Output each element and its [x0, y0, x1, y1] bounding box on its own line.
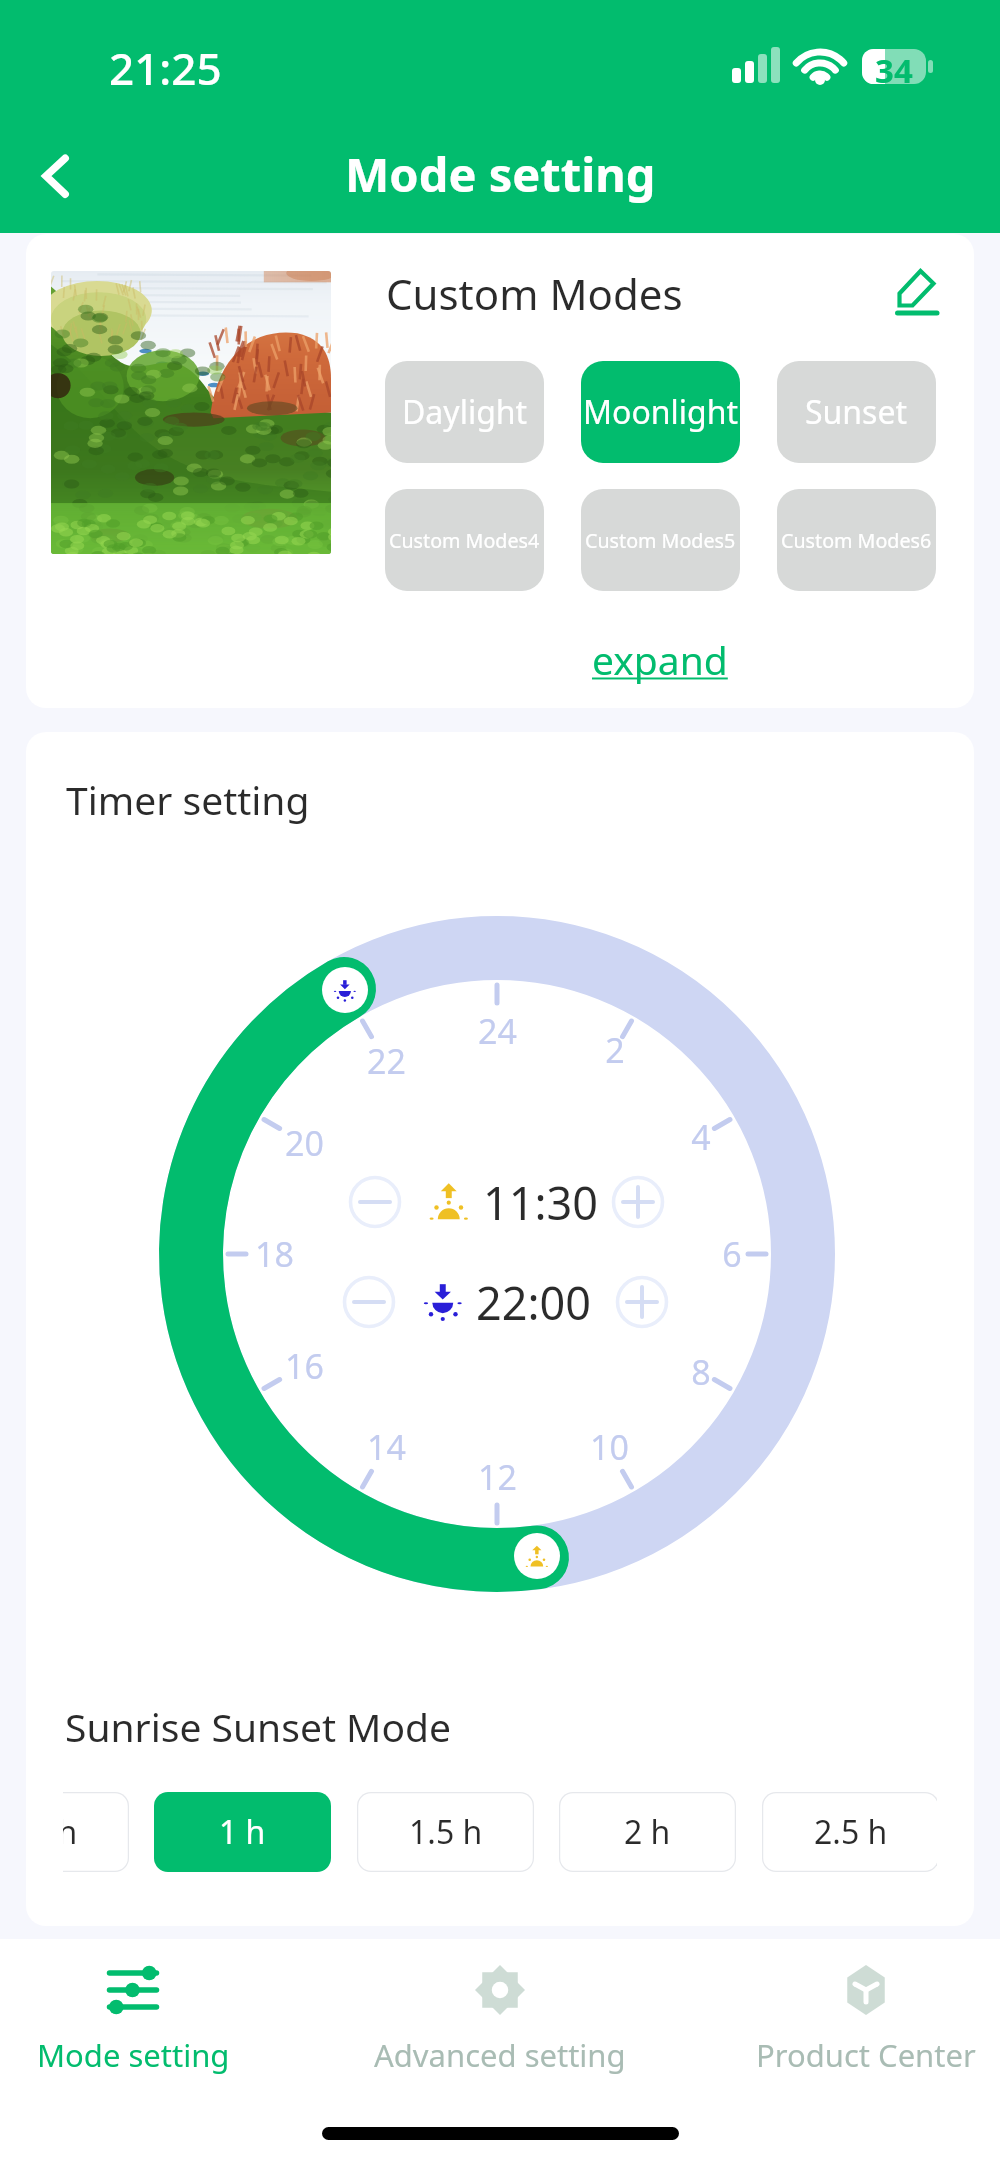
staticText: 18	[255, 1231, 294, 1277]
staticText: 2	[605, 1027, 625, 1073]
staticText: 0.5 h	[63, 1810, 78, 1854]
button[interactable]: Increase sunrise time	[608, 1172, 668, 1232]
button[interactable]: expand	[565, 623, 755, 695]
staticText: Daylight	[402, 390, 528, 434]
staticText: Sunrise Sunset Mode	[65, 1700, 452, 1753]
staticText: Custom Modes	[386, 265, 683, 322]
button[interactable]: Custom Modes4	[385, 489, 544, 591]
button[interactable]: Moonlight	[581, 361, 740, 463]
button[interactable]: Daylight	[385, 361, 544, 463]
staticText: 2.5 h	[814, 1810, 888, 1854]
staticText: 10	[590, 1424, 629, 1470]
button[interactable]: 1.5 h	[357, 1792, 534, 1872]
staticText: 12	[478, 1454, 517, 1500]
staticText: 34	[875, 48, 913, 84]
button[interactable]: 1 h	[154, 1792, 331, 1872]
staticText: 14	[367, 1424, 406, 1470]
button[interactable]: Sunset	[777, 361, 936, 463]
staticText: Custom Modes4	[389, 527, 540, 554]
button[interactable]: Custom Modes6	[777, 489, 936, 591]
staticText: 4	[691, 1114, 711, 1160]
button[interactable]: 2 h	[559, 1792, 736, 1872]
button[interactable]: Back	[16, 136, 96, 216]
button[interactable]: Advanced setting	[367, 1959, 633, 2082]
button[interactable]: Custom Modes5	[581, 489, 740, 591]
button[interactable]: 0.5 h	[63, 1792, 129, 1872]
button[interactable]: Increase sunset time	[612, 1272, 672, 1332]
staticText: Mode setting	[345, 142, 656, 206]
button[interactable]: Sunrise time	[514, 1533, 560, 1579]
staticText: Moonlight	[583, 390, 739, 434]
staticText: 22	[367, 1038, 406, 1084]
staticText: 11:30	[483, 1172, 599, 1232]
staticText: Sunset	[805, 390, 908, 434]
staticText: Advanced setting	[374, 2034, 626, 2076]
button[interactable]: Mode setting	[33, 1959, 233, 2082]
button[interactable]: Decrease sunset time	[339, 1272, 399, 1332]
staticText: Product Center	[756, 2034, 976, 2076]
staticText: expand	[592, 633, 728, 686]
staticText: 6	[722, 1231, 742, 1277]
staticText: Custom Modes6	[781, 527, 932, 554]
button[interactable]: Sunset time	[322, 967, 368, 1013]
staticText: 8	[691, 1349, 711, 1395]
staticText: 21:25	[109, 38, 222, 94]
staticText: 16	[285, 1343, 324, 1389]
button[interactable]: 2.5 h	[762, 1792, 937, 1872]
staticText: 1 h	[219, 1810, 266, 1854]
staticText: 2 h	[624, 1810, 671, 1854]
staticText: Custom Modes5	[585, 527, 736, 554]
staticText: Timer setting	[66, 773, 310, 826]
staticText: 20	[285, 1120, 324, 1166]
button[interactable]: Edit custom modes	[872, 244, 972, 332]
button[interactable]: Decrease sunrise time	[345, 1172, 405, 1232]
staticText: 22:00	[476, 1272, 592, 1332]
staticText: 24	[478, 1008, 517, 1054]
staticText: 1.5 h	[409, 1810, 483, 1854]
button[interactable]: Product Center	[746, 1959, 986, 2082]
staticText: Mode setting	[37, 2034, 230, 2076]
